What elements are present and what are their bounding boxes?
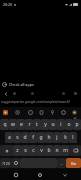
staticText: m xyxy=(63,147,68,154)
button[interactable]: Emoji xyxy=(11,158,20,168)
staticText: o xyxy=(67,121,71,128)
button[interactable]: h xyxy=(45,132,53,143)
staticText: suggestqueries.google.com/complete/searc… xyxy=(1,100,80,104)
staticText: l xyxy=(72,134,74,141)
button[interactable]: s xyxy=(13,132,21,143)
button[interactable]: y xyxy=(41,119,49,130)
staticText: y xyxy=(44,121,47,128)
staticText: r xyxy=(28,121,31,128)
staticText: u xyxy=(51,121,55,128)
button[interactable]: Shift xyxy=(0,145,13,156)
staticText: h xyxy=(47,134,51,141)
staticText: p xyxy=(75,121,79,128)
staticText: g xyxy=(39,134,43,141)
button[interactable]: Check all apps xyxy=(2,80,81,89)
button[interactable]: Symbols xyxy=(0,158,11,168)
staticText: c xyxy=(32,147,35,154)
button[interactable]: x xyxy=(21,145,29,156)
staticText: a xyxy=(8,134,11,141)
staticText: e xyxy=(20,121,23,128)
button[interactable]: Emoji xyxy=(69,107,80,118)
button[interactable]: Go xyxy=(66,158,81,168)
button[interactable]: Tabs xyxy=(59,89,68,98)
staticText: Check all apps xyxy=(9,82,34,87)
button[interactable]: d xyxy=(21,132,29,143)
staticText: s xyxy=(16,134,19,141)
button[interactable]: k xyxy=(61,132,69,143)
button[interactable]: Google xyxy=(0,107,11,118)
staticText: n xyxy=(55,147,59,154)
staticText: t xyxy=(36,121,38,128)
button[interactable]: u xyxy=(49,119,57,130)
button[interactable]: . xyxy=(57,158,66,168)
staticText: 20:26 xyxy=(3,2,13,7)
staticText: Go xyxy=(71,161,77,166)
button[interactable]: e xyxy=(17,119,25,130)
button[interactable]: v xyxy=(37,145,45,156)
staticText: x xyxy=(24,147,27,154)
button[interactable]: g xyxy=(37,132,45,143)
button[interactable]: Home xyxy=(28,89,37,98)
button[interactable]: Backspace xyxy=(69,145,81,156)
button[interactable]: n xyxy=(53,145,61,156)
button[interactable]: a xyxy=(5,132,13,143)
button[interactable]: r xyxy=(25,119,33,130)
button[interactable]: Forward xyxy=(10,89,19,98)
button[interactable]: Collapse xyxy=(69,112,80,123)
button[interactable]: j xyxy=(53,132,61,143)
button[interactable]: f xyxy=(29,132,37,143)
button[interactable]: Keyboard tool xyxy=(12,107,23,118)
button[interactable]: Keyboard tool xyxy=(36,107,47,118)
button[interactable]: w xyxy=(9,119,17,130)
staticText: q xyxy=(3,121,7,128)
button[interactable]: q xyxy=(0,119,9,130)
staticText: v xyxy=(40,147,43,154)
staticText: i xyxy=(60,121,62,128)
button[interactable]: Home xyxy=(35,170,45,180)
button[interactable]: Menu xyxy=(71,89,80,98)
button[interactable]: Back xyxy=(1,89,10,98)
button[interactable]: Keyboard tool xyxy=(58,107,69,118)
staticText: k xyxy=(64,134,67,141)
button[interactable]: Recent apps xyxy=(11,170,21,180)
staticText: ?123 xyxy=(2,161,10,166)
button[interactable]: t xyxy=(33,119,41,130)
staticText: d xyxy=(23,134,27,141)
button[interactable]: p xyxy=(73,119,81,130)
staticText: . xyxy=(61,160,63,167)
button[interactable]: i xyxy=(57,119,65,130)
staticText: j xyxy=(56,134,58,141)
button[interactable]: Keyboard tool xyxy=(25,107,36,118)
staticText: f xyxy=(32,134,34,141)
button[interactable]: Back xyxy=(60,170,70,180)
staticText: w xyxy=(11,121,15,128)
staticText: z xyxy=(16,147,19,154)
button[interactable]: o xyxy=(65,119,73,130)
button[interactable]: l xyxy=(69,132,77,143)
button[interactable]: b xyxy=(45,145,53,156)
button[interactable]: m xyxy=(61,145,69,156)
button[interactable]: c xyxy=(29,145,37,156)
staticText: b xyxy=(47,147,51,154)
button[interactable]: Keyboard tool xyxy=(47,107,58,118)
button[interactable]: z xyxy=(13,145,21,156)
